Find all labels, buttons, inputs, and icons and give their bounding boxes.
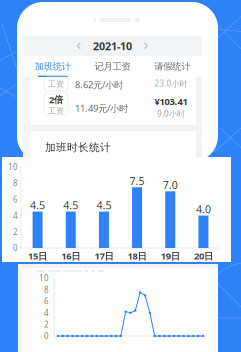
staticText: 16日: [61, 250, 80, 262]
staticText: 7.5: [130, 174, 145, 188]
staticText: 4: [13, 210, 18, 221]
staticText: 2倍: [49, 93, 63, 106]
staticText: 0: [44, 331, 49, 341]
staticText: 15日: [28, 250, 47, 262]
staticText: 7.0: [163, 178, 178, 192]
staticText: 4.5: [96, 198, 111, 212]
staticText: 4.0: [196, 202, 211, 216]
staticText: 8: [44, 284, 49, 295]
staticText: 8: [13, 178, 18, 188]
staticText: 20日: [194, 250, 213, 262]
staticText: 10: [39, 273, 49, 283]
staticText: 0: [13, 243, 18, 253]
staticText: 6: [13, 194, 18, 205]
staticText: 请假统计: [154, 61, 190, 72]
staticText: 记月工资: [94, 61, 130, 72]
button[interactable]: 记月工资: [83, 56, 142, 77]
button[interactable]: Previous month: [72, 36, 86, 56]
staticText: 加班时长统计: [45, 141, 111, 154]
staticText: 4.5: [63, 198, 78, 212]
staticText: 8.62元/小时: [75, 78, 123, 91]
button[interactable]: Next month: [139, 36, 153, 56]
staticText: 2021-10: [93, 39, 132, 53]
staticText: 加班统计: [35, 61, 71, 72]
staticText: 工资: [48, 106, 64, 116]
staticText: 4.5: [30, 198, 45, 212]
button[interactable]: 加班统计: [23, 56, 83, 77]
staticText: 工资: [48, 79, 64, 89]
staticText: 23.0小时: [154, 78, 187, 89]
staticText: 17日: [94, 250, 113, 262]
button[interactable]: 请假统计: [142, 56, 202, 77]
staticText: 6: [44, 296, 49, 306]
staticText: 9.0小时: [157, 108, 185, 119]
staticText: 18日: [128, 250, 147, 262]
staticText: 11.49元/小时: [75, 102, 128, 114]
staticText: 2: [13, 226, 18, 237]
staticText: ¥103.41: [154, 95, 187, 108]
staticText: 19日: [161, 250, 180, 262]
staticText: 2: [44, 319, 49, 330]
staticText: 4: [44, 307, 49, 318]
staticText: 10: [8, 162, 18, 172]
